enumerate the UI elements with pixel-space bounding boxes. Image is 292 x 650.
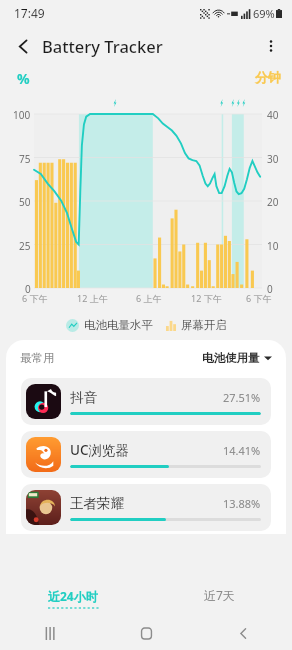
button[interactable]: UC浏览器 bbox=[21, 431, 271, 478]
staticText: 27.51% bbox=[223, 390, 261, 405]
button[interactable]: Back bbox=[7, 30, 39, 62]
button[interactable]: Home bbox=[98, 616, 195, 650]
staticText: 电池使用量 bbox=[202, 351, 260, 365]
button[interactable]: 近24小时 bbox=[0, 580, 146, 616]
staticText: 25 bbox=[19, 239, 31, 253]
staticText: 30 bbox=[267, 152, 279, 166]
staticText: 6 上午 bbox=[136, 292, 162, 304]
button[interactable]: More options bbox=[255, 30, 287, 62]
staticText: 抖音 bbox=[70, 389, 97, 406]
staticText: % bbox=[17, 69, 30, 88]
staticText: 13.88% bbox=[223, 496, 261, 511]
staticText: 50 bbox=[19, 195, 31, 209]
staticText: Battery Tracker bbox=[42, 35, 163, 57]
staticText: 0 bbox=[25, 282, 31, 296]
staticText: 0 bbox=[267, 282, 273, 296]
staticText: 电池电量水平 bbox=[84, 318, 153, 332]
staticText: 屏幕开启 bbox=[181, 318, 227, 332]
button[interactable]: 近7天 bbox=[146, 580, 292, 616]
staticText: 6 下午 bbox=[22, 292, 48, 304]
staticText: 69% bbox=[253, 6, 275, 21]
staticText: 分钟 bbox=[255, 69, 281, 85]
staticText: 王者荣耀 bbox=[70, 495, 124, 512]
staticText: 14.41% bbox=[223, 443, 261, 458]
staticText: UC浏览器 bbox=[70, 441, 130, 459]
button[interactable]: Recent apps bbox=[0, 616, 98, 650]
staticText: 17:49 bbox=[14, 5, 45, 21]
button[interactable]: 电池使用量 bbox=[202, 351, 272, 365]
button[interactable]: 王者荣耀 bbox=[21, 484, 271, 531]
button[interactable]: Back bbox=[195, 616, 292, 650]
staticText: 12 上午 bbox=[77, 292, 108, 304]
staticText: 10 bbox=[267, 239, 279, 253]
staticText: 近7天 bbox=[204, 587, 235, 603]
staticText: 75 bbox=[19, 152, 31, 166]
staticText: 100 bbox=[13, 108, 31, 122]
staticText: 6 下午 bbox=[246, 292, 272, 304]
staticText: 40 bbox=[267, 108, 279, 122]
button[interactable]: 抖音 bbox=[21, 378, 271, 425]
staticText: 20 bbox=[267, 195, 279, 209]
staticText: 12 下午 bbox=[191, 292, 222, 304]
staticText: 近24小时 bbox=[48, 588, 98, 604]
staticText: 最常用 bbox=[20, 351, 55, 365]
